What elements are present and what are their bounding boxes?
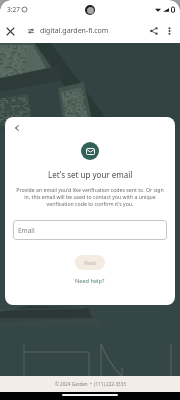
staticText: Provide an email you'd like verification… xyxy=(14,186,166,207)
staticText: Next xyxy=(84,259,97,267)
staticText: 3:27 xyxy=(7,5,20,14)
button[interactable]: More options xyxy=(162,23,177,38)
button[interactable]: Share xyxy=(146,23,161,38)
staticText: Let's set up your email xyxy=(48,169,133,180)
button[interactable]: Email xyxy=(13,220,167,240)
staticText: Need help? xyxy=(75,277,105,285)
staticText: Email xyxy=(18,226,35,235)
button[interactable]: Back xyxy=(10,121,23,134)
button[interactable]: Next xyxy=(75,255,105,270)
button[interactable]: Close xyxy=(3,24,17,38)
staticText: © 2024 Garden • (111) 222-3333 xyxy=(55,381,126,387)
button[interactable]: Need help? xyxy=(72,276,108,286)
staticText: digital.garden-fi.com xyxy=(40,26,109,36)
